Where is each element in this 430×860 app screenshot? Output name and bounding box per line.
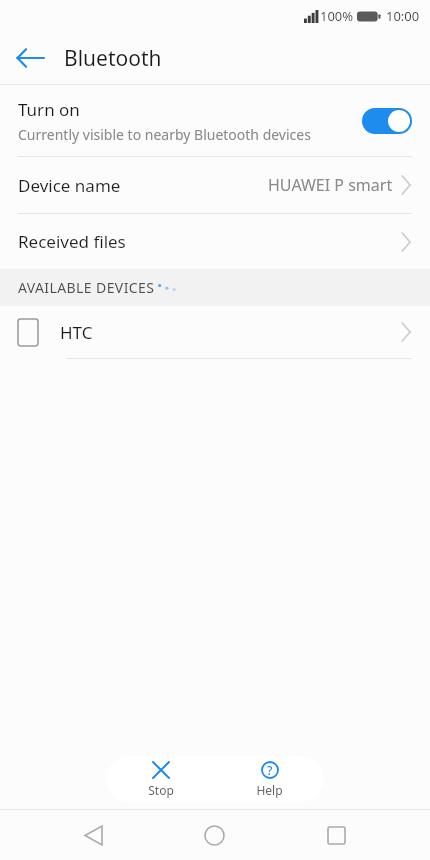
- staticText: Device name: [18, 174, 121, 197]
- button[interactable]: Recent apps: [308, 810, 364, 860]
- staticText: AVAILABLE DEVICES: [18, 278, 155, 297]
- button[interactable]: Received files: [0, 214, 430, 269]
- staticText: Bluetooth: [64, 44, 162, 73]
- staticText: Help: [256, 782, 283, 798]
- button[interactable]: Turn on: [0, 85, 430, 156]
- button[interactable]: Stop: [106, 756, 215, 802]
- button[interactable]: Back: [65, 810, 121, 860]
- staticText: 10:00: [386, 7, 420, 25]
- button[interactable]: Bluetooth toggle: [362, 108, 412, 134]
- staticText: Currently visible to nearby Bluetooth de…: [18, 125, 311, 144]
- button[interactable]: Home: [186, 810, 242, 860]
- staticText: ?: [267, 762, 273, 778]
- staticText: HUAWEI P smart: [268, 174, 393, 196]
- staticText: Received files: [18, 230, 126, 253]
- staticText: HTC: [60, 321, 93, 344]
- staticText: Stop: [148, 782, 174, 798]
- staticText: 100%: [320, 7, 354, 25]
- button[interactable]: HTC: [0, 306, 430, 358]
- button[interactable]: Device name: [0, 157, 430, 213]
- button[interactable]: Back: [8, 36, 52, 80]
- button[interactable]: ?: [215, 756, 324, 802]
- staticText: Turn on: [18, 98, 80, 121]
